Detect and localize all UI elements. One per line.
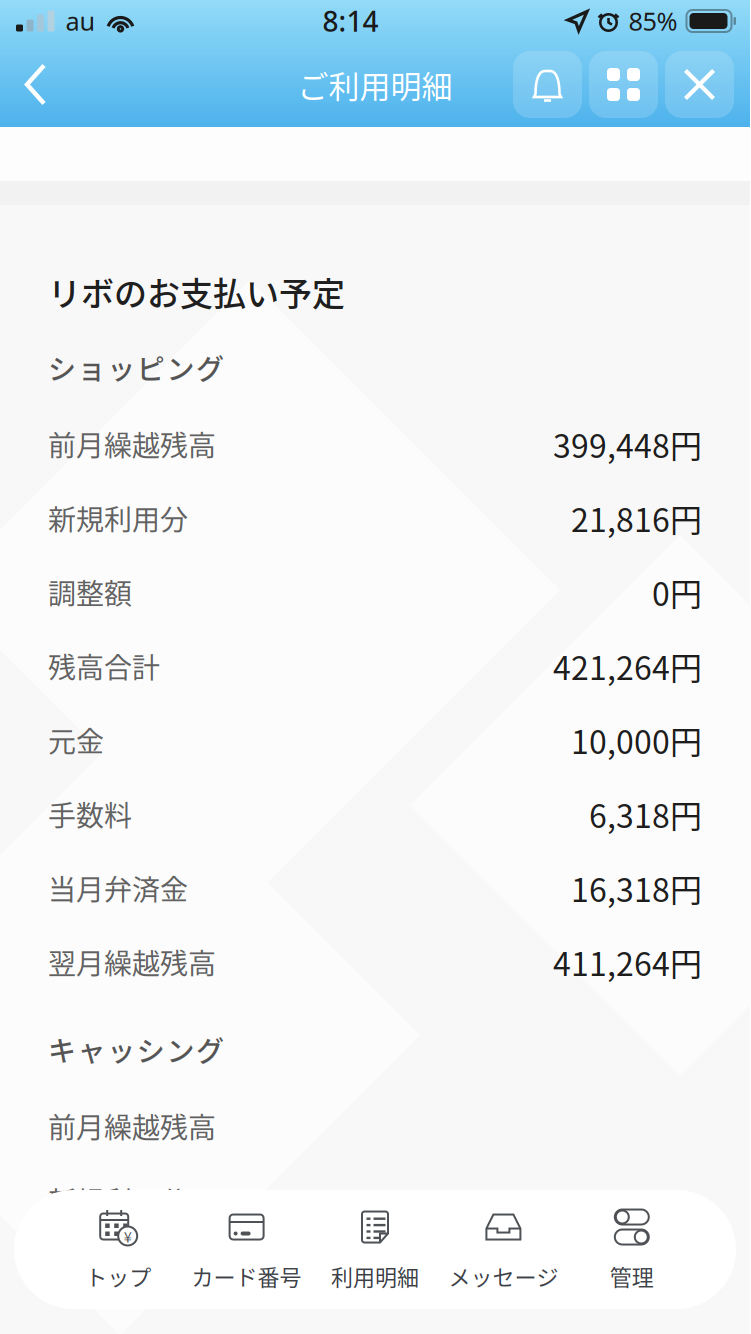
staticText: 前月繰越残高 (48, 1106, 216, 1146)
button[interactable]: カード番号 (182, 1190, 311, 1309)
button[interactable]: Notifications (513, 51, 582, 118)
staticText: au (65, 4, 95, 38)
staticText: カード番号 (192, 1260, 302, 1292)
staticText: 399,448円 (553, 421, 702, 467)
staticText: 残高合計 (48, 646, 160, 686)
staticText: ¥ (124, 1225, 132, 1247)
staticText: 当月弁済金 (48, 868, 188, 908)
staticText: 新規利用分 (48, 1180, 188, 1220)
staticText: 16,318円 (571, 865, 702, 911)
staticText: 調整額 (48, 572, 132, 612)
button[interactable]: Close (665, 51, 734, 118)
staticText: 411,264円 (553, 939, 702, 985)
staticText: 10,000円 (571, 717, 702, 763)
staticText: 管理 (610, 1260, 654, 1292)
staticText: 新規利用分 (48, 498, 188, 538)
staticText: 元金 (48, 720, 104, 760)
staticText: リボのお支払い予定 (48, 268, 345, 315)
staticText: 手数料 (48, 794, 132, 834)
staticText: 85% (628, 4, 677, 38)
staticText: 421,264円 (553, 643, 702, 689)
button[interactable]: メッセージ (439, 1190, 568, 1309)
button[interactable]: 管理 (568, 1190, 696, 1309)
staticText: ご利用明細 (297, 62, 452, 107)
staticText: キャッシング (48, 1029, 224, 1070)
staticText: トップ (85, 1260, 151, 1292)
staticText: ショッピング (48, 347, 224, 388)
staticText: 8:14 (322, 2, 378, 40)
button[interactable]: 利用明細 (311, 1190, 439, 1309)
staticText: メッセージ (448, 1260, 558, 1292)
button[interactable]: ¥ (54, 1190, 182, 1309)
staticText: 利用明細 (331, 1260, 419, 1292)
staticText: 21,816円 (571, 495, 702, 541)
staticText: 0円 (652, 569, 702, 615)
button[interactable]: Apps (589, 51, 658, 118)
staticText: 6,318円 (589, 791, 702, 837)
button[interactable]: Back (0, 42, 71, 127)
staticText: 翌月繰越残高 (48, 942, 216, 982)
staticText: 前月繰越残高 (48, 424, 216, 464)
